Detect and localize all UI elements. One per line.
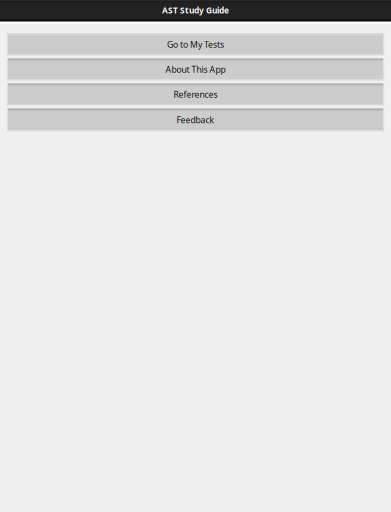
staticText: Go to My Tests (167, 39, 224, 50)
staticText: About This App (165, 64, 225, 75)
button[interactable]: Feedback (6, 108, 385, 132)
button[interactable]: About This App (6, 58, 385, 81)
staticText: References (173, 89, 217, 100)
button[interactable]: References (6, 83, 385, 106)
button[interactable]: Go to My Tests (6, 33, 385, 56)
staticText: AST Study Guide (162, 5, 229, 16)
staticText: Feedback (176, 114, 214, 126)
